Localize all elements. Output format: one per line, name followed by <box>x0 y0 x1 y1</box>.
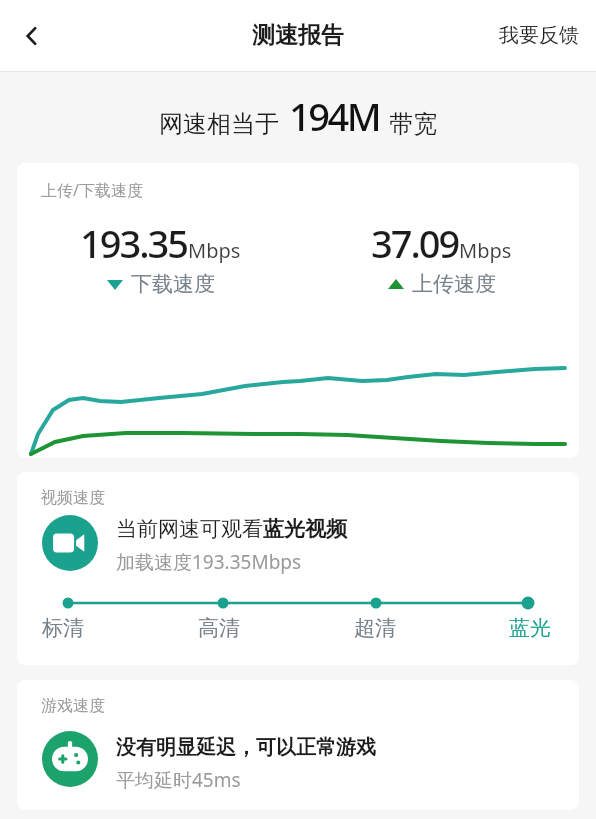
staticText: 37.09 <box>371 217 459 269</box>
button[interactable]: 超清 <box>335 615 415 641</box>
button[interactable] <box>42 731 98 787</box>
staticText: 带宽 <box>383 106 438 139</box>
button[interactable] <box>42 515 98 571</box>
staticText: 网速相当于 <box>159 106 286 139</box>
staticText: 当前网速可观看蓝光视频 <box>116 516 347 542</box>
staticText: 高清 <box>198 615 240 641</box>
button[interactable]: 我要反馈 <box>499 23 579 48</box>
staticText: 超清 <box>354 615 396 641</box>
staticText: Mbps <box>188 237 241 264</box>
staticText: Mbps <box>459 237 512 264</box>
staticText: 没有明显延迟，可以正常游戏 <box>116 735 376 760</box>
staticText: 蓝光 <box>509 615 551 641</box>
staticText: 上传速度 <box>412 271 496 297</box>
staticText: 上传/下载速度 <box>41 179 143 201</box>
staticText: 游戏速度 <box>41 696 105 716</box>
staticText: 视频速度 <box>41 488 105 508</box>
staticText: 194M <box>289 90 380 142</box>
button[interactable]: 高清 <box>179 615 259 641</box>
button[interactable]: 蓝光 <box>490 615 570 641</box>
staticText: 平均延时45ms <box>116 767 241 793</box>
staticText: 我要反馈 <box>499 23 579 48</box>
button[interactable] <box>14 18 50 54</box>
staticText: 标清 <box>42 615 84 641</box>
staticText: 测速报告 <box>252 21 344 50</box>
staticText: 下载速度 <box>131 271 215 297</box>
staticText: 加载速度193.35Mbps <box>116 549 302 575</box>
staticText: 193.35 <box>80 217 188 269</box>
button[interactable]: 标清 <box>23 615 103 641</box>
